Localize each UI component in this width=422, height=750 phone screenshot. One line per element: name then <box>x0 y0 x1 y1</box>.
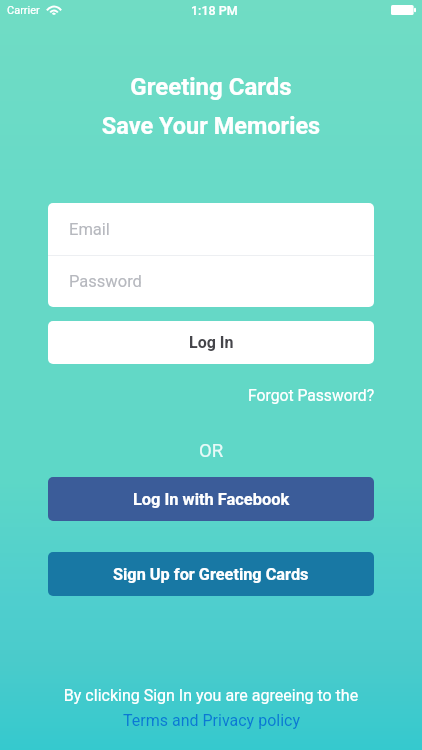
other: Battery full <box>391 5 416 15</box>
staticText: Password <box>69 272 142 291</box>
staticText: By clicking Sign In you are agreeing to … <box>0 686 422 705</box>
staticText: Save Your Memories <box>0 112 422 140</box>
staticText: OR <box>0 440 422 462</box>
button[interactable]: Terms and Privacy policy <box>123 711 300 730</box>
staticText: 1:18 PM <box>191 3 238 18</box>
button[interactable]: Log In <box>48 321 374 364</box>
staticText: Sign Up for Greeting Cards <box>113 565 309 584</box>
staticText: Log In with Facebook <box>133 490 290 509</box>
button[interactable]: Log In with Facebook <box>48 477 374 521</box>
other: Wi-Fi signal <box>47 6 61 15</box>
staticText: Greeting Cards <box>0 73 422 101</box>
button[interactable]: Email <box>48 203 374 255</box>
button[interactable]: Sign Up for Greeting Cards <box>48 552 374 596</box>
staticText: Carrier <box>7 4 40 17</box>
staticText: Log In <box>189 333 234 352</box>
staticText: Email <box>69 220 110 239</box>
button[interactable]: Password <box>48 256 374 307</box>
button[interactable]: Forgot Password? <box>248 386 375 404</box>
